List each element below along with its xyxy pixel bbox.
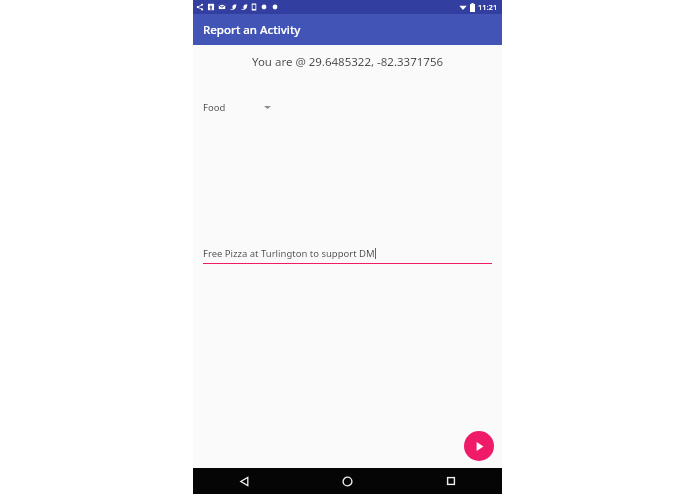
button[interactable]: Recent apps xyxy=(399,468,502,494)
staticText: Free Pizza at Turlington to support DM xyxy=(203,247,375,260)
button[interactable]: Back xyxy=(193,468,296,494)
staticText: Food xyxy=(203,101,226,114)
staticText: 11:21 xyxy=(478,2,498,12)
button[interactable]: Food xyxy=(203,98,271,116)
button[interactable]: Free Pizza at Turlington to support DM xyxy=(203,247,492,264)
staticText: You are @ 29.6485322, -82.3371756 xyxy=(193,54,502,70)
button[interactable]: Home xyxy=(296,468,399,494)
staticText: Report an Activity xyxy=(203,22,301,38)
button[interactable]: Submit report xyxy=(464,431,494,461)
